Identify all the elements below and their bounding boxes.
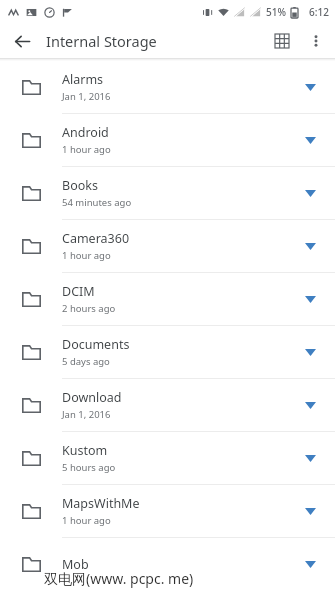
button[interactable]: Android bbox=[0, 114, 335, 166]
staticText: Documents bbox=[62, 336, 130, 353]
button[interactable]: Expand Alarms bbox=[291, 68, 329, 106]
staticText: Mob bbox=[62, 556, 89, 573]
button[interactable]: Grid view bbox=[265, 24, 299, 58]
staticText: Android bbox=[62, 124, 109, 141]
staticText: Jan 1, 2016 bbox=[62, 408, 111, 421]
staticText: 5 hours ago bbox=[62, 461, 116, 474]
button[interactable]: Books bbox=[0, 167, 335, 219]
staticText: MapsWithMe bbox=[62, 495, 140, 512]
button[interactable]: More options bbox=[299, 24, 333, 58]
button[interactable]: Documents bbox=[0, 326, 335, 378]
staticText: Jan 1, 2016 bbox=[62, 90, 111, 103]
button[interactable]: Download bbox=[0, 379, 335, 431]
staticText: Alarms bbox=[62, 71, 104, 88]
staticText: DCIM bbox=[62, 283, 95, 300]
button[interactable]: Expand Camera360 bbox=[291, 227, 329, 265]
button[interactable]: Expand MapsWithMe bbox=[291, 492, 329, 530]
staticText: 1 hour ago bbox=[62, 514, 111, 527]
staticText: 1 hour ago bbox=[62, 249, 111, 262]
button[interactable]: Expand Documents bbox=[291, 333, 329, 371]
button[interactable]: Expand Mob bbox=[291, 545, 329, 583]
staticText: 5 days ago bbox=[62, 355, 110, 368]
staticText: 54 minutes ago bbox=[62, 196, 132, 209]
button[interactable]: DCIM bbox=[0, 273, 335, 325]
button[interactable]: Mob bbox=[0, 538, 335, 590]
button[interactable]: Back bbox=[4, 24, 40, 58]
button[interactable]: MapsWithMe bbox=[0, 485, 335, 537]
button[interactable]: Camera360 bbox=[0, 220, 335, 272]
button[interactable]: Expand Books bbox=[291, 174, 329, 212]
staticText: Internal Storage bbox=[46, 31, 265, 51]
staticText: 6:12 bbox=[309, 5, 329, 19]
button[interactable]: Expand Download bbox=[291, 386, 329, 424]
button[interactable]: Alarms bbox=[0, 61, 335, 113]
staticText: Camera360 bbox=[62, 230, 130, 247]
staticText: Books bbox=[62, 177, 98, 194]
staticText: 2 hours ago bbox=[62, 302, 116, 315]
button[interactable]: Expand Kustom bbox=[291, 439, 329, 477]
staticText: 1 hour ago bbox=[62, 143, 111, 156]
staticText: 双电网(www. pcpc. me) bbox=[44, 569, 194, 588]
staticText: Kustom bbox=[62, 442, 108, 459]
staticText: Download bbox=[62, 389, 122, 406]
staticText: 51% bbox=[266, 5, 286, 19]
button[interactable]: Kustom bbox=[0, 432, 335, 484]
button[interactable]: Expand Android bbox=[291, 121, 329, 159]
button[interactable]: Expand DCIM bbox=[291, 280, 329, 318]
